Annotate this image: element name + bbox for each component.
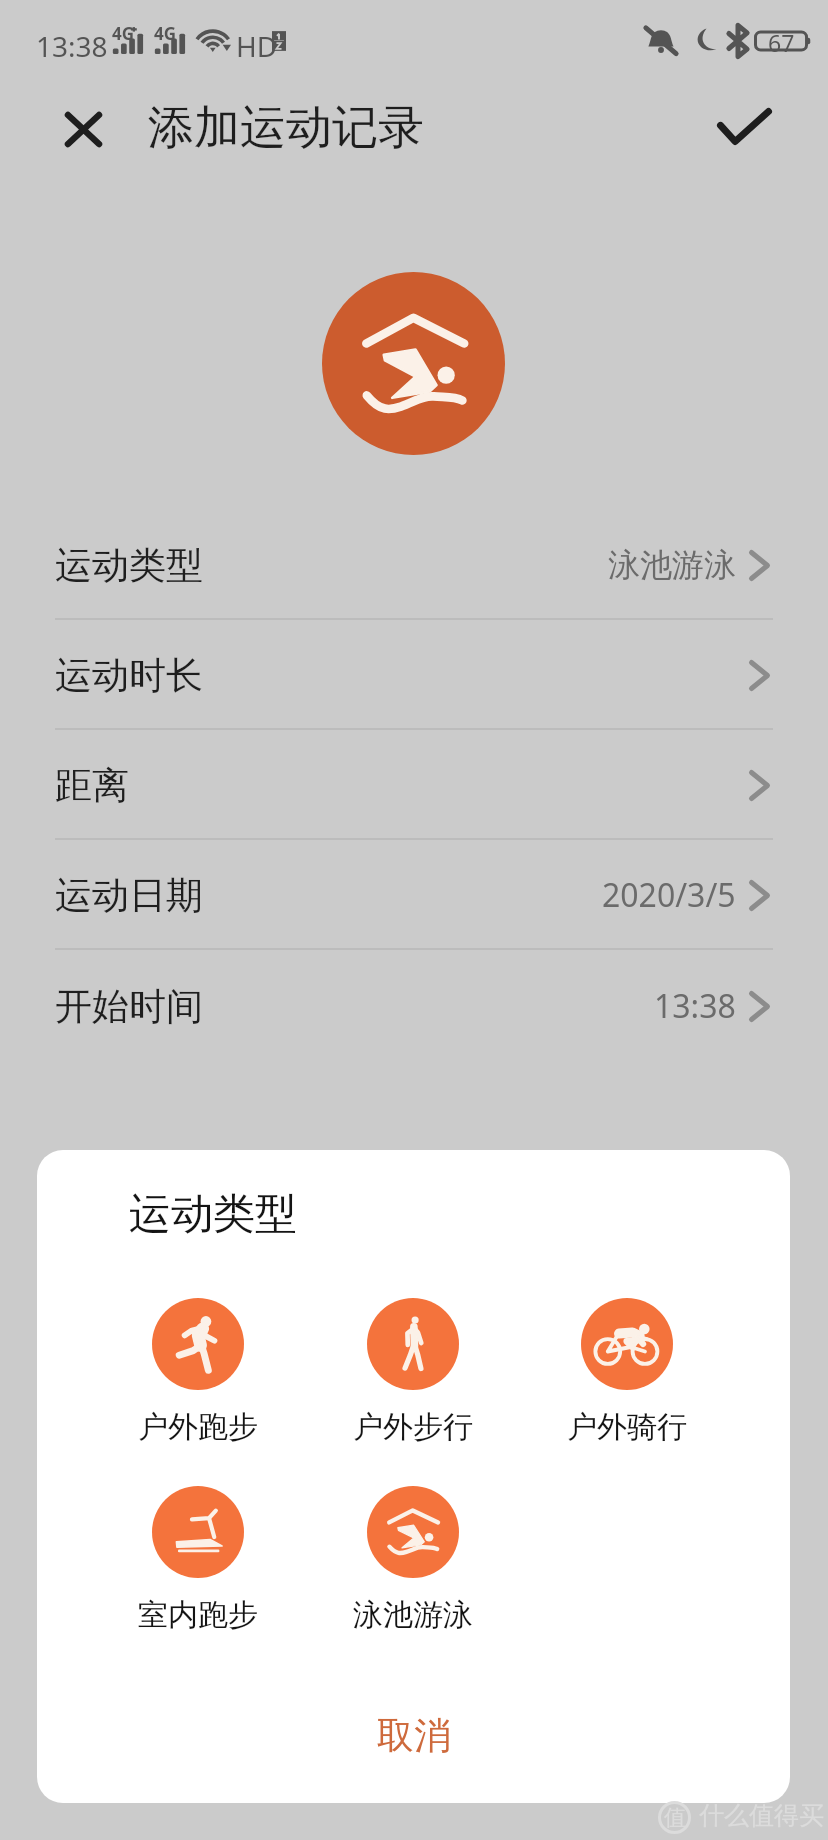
- staticText: 值: [664, 1804, 686, 1832]
- button[interactable]: 室内跑步: [91, 1486, 305, 1634]
- staticText: 运动类型: [55, 542, 203, 589]
- staticText: 泳池游泳: [353, 1596, 473, 1634]
- staticText: 添加运动记录: [148, 99, 424, 157]
- button[interactable]: 泳池游泳: [306, 1486, 520, 1634]
- staticText: 距离: [55, 762, 129, 809]
- staticText: 户外跑步: [138, 1408, 258, 1446]
- button[interactable]: 户外跑步: [91, 1298, 305, 1446]
- staticText: 13:38: [654, 984, 736, 1028]
- staticText: 户外骑行: [567, 1408, 687, 1446]
- button[interactable]: 户外步行: [306, 1298, 520, 1446]
- staticText: 4G: [154, 22, 177, 45]
- button[interactable]: Close: [45, 91, 121, 167]
- button[interactable]: 户外骑行: [520, 1298, 734, 1446]
- staticText: 什么值得买: [699, 1800, 824, 1831]
- button[interactable]: 取消: [37, 1690, 790, 1780]
- button[interactable]: 运动类型: [0, 510, 828, 620]
- button[interactable]: 开始时间: [0, 951, 828, 1061]
- staticText: 取消: [377, 1712, 451, 1759]
- staticText: 13:38: [36, 27, 108, 65]
- staticText: 室内跑步: [138, 1596, 258, 1634]
- button[interactable]: 运动时长: [0, 620, 828, 730]
- staticText: 运动日期: [55, 872, 203, 919]
- staticText: 67: [768, 27, 795, 55]
- staticText: 4G: [112, 22, 135, 45]
- staticText: 运动类型: [129, 1188, 297, 1241]
- button[interactable]: 距离: [0, 730, 828, 840]
- button[interactable]: Confirm: [706, 88, 782, 164]
- staticText: 2020/3/5: [602, 873, 736, 917]
- staticText: HD: [236, 27, 278, 65]
- staticText: 户外步行: [353, 1408, 473, 1446]
- staticText: 泳池游泳: [608, 545, 736, 585]
- staticText: 运动时长: [55, 652, 203, 699]
- button[interactable]: 运动日期: [0, 840, 828, 950]
- staticText: 开始时间: [55, 983, 203, 1030]
